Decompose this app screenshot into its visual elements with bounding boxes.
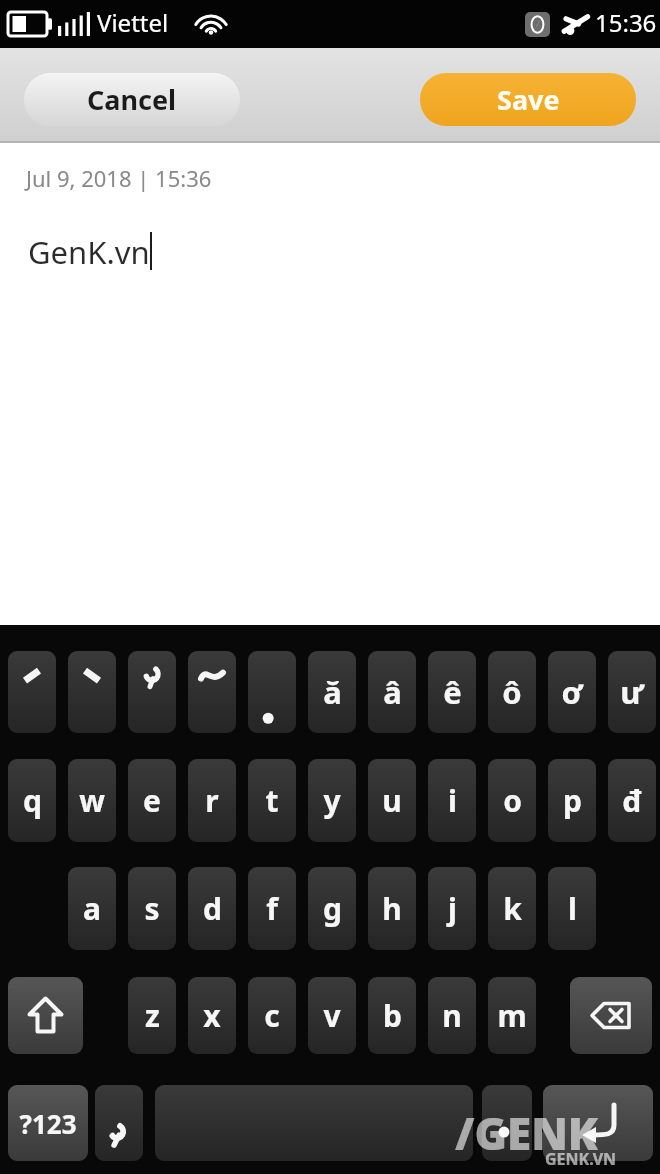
staticText: â <box>383 671 402 713</box>
staticText: Jul 9, 2018 | 15:36 <box>26 163 212 193</box>
button[interactable]: â <box>368 651 416 733</box>
button[interactable]: x <box>188 977 236 1054</box>
staticText: g <box>323 888 342 929</box>
button[interactable]: Space <box>155 1085 473 1161</box>
button[interactable]: ?123 <box>8 1085 88 1161</box>
staticText: h <box>382 888 402 929</box>
staticText: ư <box>620 671 644 713</box>
button[interactable]: q <box>8 759 56 842</box>
staticText: x <box>203 995 221 1036</box>
staticText: Viettel <box>97 6 169 39</box>
button[interactable]: f <box>248 867 296 950</box>
staticText: q <box>23 780 42 821</box>
button[interactable]: ô <box>488 651 536 733</box>
button[interactable]: m <box>488 977 536 1054</box>
staticText: s <box>144 888 160 929</box>
button[interactable]: v <box>308 977 356 1054</box>
button[interactable]: ê <box>428 651 476 733</box>
staticText: 15:36 <box>595 6 657 39</box>
button[interactable]: Shift <box>8 977 83 1054</box>
staticText: n <box>442 995 462 1036</box>
staticText: ?123 <box>19 1106 77 1141</box>
staticText: c <box>264 995 280 1036</box>
button[interactable]: g <box>308 867 356 950</box>
staticText: ơ <box>561 671 583 713</box>
button[interactable]: e <box>128 759 176 842</box>
staticText: GENK.VN <box>545 1148 617 1170</box>
staticText: GenK.vn <box>28 231 150 273</box>
button[interactable]: l <box>548 867 596 950</box>
button[interactable]: h <box>368 867 416 950</box>
button[interactable]: s <box>128 867 176 950</box>
staticText: l <box>568 888 577 929</box>
button[interactable]: Acute tone <box>8 651 56 733</box>
button[interactable]: Period <box>482 1085 532 1161</box>
staticText: Save <box>497 81 560 118</box>
staticText: u <box>382 780 402 821</box>
staticText: f <box>266 888 278 929</box>
staticText: r <box>205 780 219 821</box>
staticText: z <box>145 995 160 1036</box>
button[interactable]: c <box>248 977 296 1054</box>
button[interactable]: Comma <box>95 1085 143 1161</box>
button[interactable]: Backspace <box>570 977 652 1054</box>
staticText: đ <box>622 780 642 821</box>
button[interactable]: Dot below tone <box>248 651 296 733</box>
button[interactable]: o <box>488 759 536 842</box>
staticText: o <box>503 780 522 821</box>
button[interactable]: ư <box>608 651 656 733</box>
button[interactable]: ă <box>308 651 356 733</box>
button[interactable]: n <box>428 977 476 1054</box>
button[interactable]: r <box>188 759 236 842</box>
button[interactable]: t <box>248 759 296 842</box>
staticText: /GENK <box>455 1103 599 1163</box>
button[interactable]: Grave tone <box>68 651 116 733</box>
staticText: p <box>563 780 582 821</box>
button[interactable]: Enter <box>543 1085 653 1161</box>
staticText: ă <box>323 671 342 713</box>
staticText: d <box>203 888 222 929</box>
button[interactable]: Cancel <box>24 73 240 126</box>
button[interactable]: i <box>428 759 476 842</box>
button[interactable]: a <box>68 867 116 950</box>
button[interactable]: Save <box>420 73 636 126</box>
button[interactable]: p <box>548 759 596 842</box>
button[interactable]: đ <box>608 759 656 842</box>
button[interactable]: z <box>128 977 176 1054</box>
button[interactable]: w <box>68 759 116 842</box>
staticText: j <box>448 888 457 929</box>
staticText: a <box>83 888 101 929</box>
staticText: ê <box>443 671 462 713</box>
staticText: k <box>503 888 522 929</box>
staticText: Cancel <box>87 81 177 118</box>
staticText: y <box>323 780 341 821</box>
staticText: e <box>143 780 161 821</box>
staticText: i <box>448 780 457 821</box>
button[interactable]: Hook tone <box>128 651 176 733</box>
staticText: m <box>497 995 527 1036</box>
button[interactable]: d <box>188 867 236 950</box>
staticText: w <box>79 780 105 821</box>
button[interactable]: y <box>308 759 356 842</box>
button[interactable]: ơ <box>548 651 596 733</box>
staticText: v <box>323 995 341 1036</box>
button[interactable]: j <box>428 867 476 950</box>
staticText: t <box>265 780 279 821</box>
button[interactable]: Tilde tone <box>188 651 236 733</box>
button[interactable]: b <box>368 977 416 1054</box>
staticText: b <box>383 995 402 1036</box>
button[interactable]: u <box>368 759 416 842</box>
staticText: ô <box>502 671 522 713</box>
button[interactable]: k <box>488 867 536 950</box>
